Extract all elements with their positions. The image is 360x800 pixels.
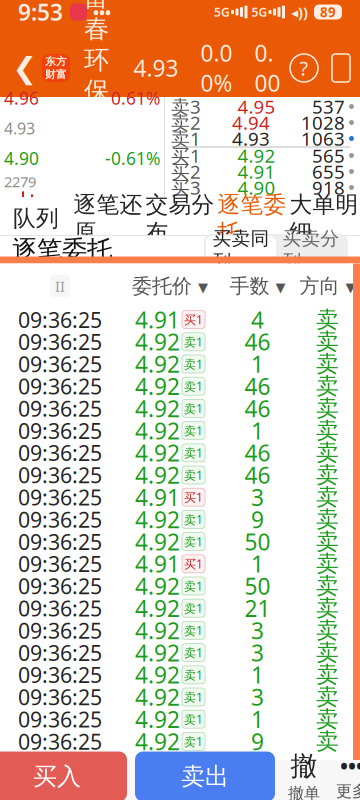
staticText: 更多 (336, 781, 360, 800)
staticText: 卖1 (184, 400, 203, 416)
staticText: ❮ (12, 51, 37, 85)
staticText: 卖1 (184, 600, 203, 616)
staticText: 大单明细 (289, 191, 358, 246)
staticText: 1 (251, 415, 264, 446)
staticText: 4.90 (237, 175, 275, 200)
staticText: 卖 (316, 439, 339, 467)
staticText: 4.92 (135, 415, 180, 446)
staticText: 买1 (184, 489, 203, 505)
staticText: 卖3 (171, 94, 201, 119)
staticText: 4.92 (135, 637, 180, 668)
staticText: 卖1 (171, 126, 201, 151)
staticText: 卖 (316, 683, 339, 711)
button[interactable]: 交易分布 (144, 197, 216, 235)
staticText: 09:36:25 (18, 527, 102, 556)
button[interactable]: 买入 (0, 751, 127, 800)
staticText: 9 (251, 726, 264, 756)
staticText: 卖1 (184, 334, 203, 350)
staticText: 4.93 (4, 118, 35, 139)
staticText: 09:36:25 (18, 416, 102, 445)
staticText: 3 (251, 482, 264, 512)
staticText: 3 (251, 682, 264, 712)
staticText: 09:36:25 (18, 305, 102, 334)
staticText: 卖 (316, 705, 339, 733)
staticText: 逐笔还原 (73, 191, 142, 246)
staticText: 2279 (4, 172, 36, 191)
staticText: 4.95 (237, 94, 275, 119)
staticText: 买3 (171, 175, 201, 200)
button[interactable]: 帮助 (290, 54, 318, 82)
staticText: 4 (251, 304, 264, 335)
button[interactable]: 撤 (283, 750, 325, 800)
staticText: 卖1 (184, 711, 203, 727)
staticText: 46 (244, 327, 270, 357)
button[interactable]: 方向 ▾ (295, 274, 360, 298)
staticText: 队列 (13, 205, 59, 232)
staticText: 4.91 (135, 549, 180, 579)
staticText: 5G (214, 4, 230, 20)
button[interactable]: 买卖同列 (206, 236, 276, 264)
button[interactable]: 逐笔委托 (216, 197, 288, 235)
button[interactable]: 返回 (8, 45, 42, 91)
staticText: 卖 (316, 727, 339, 755)
button[interactable]: ••• (325, 750, 360, 800)
staticText: 09:36:25 (18, 350, 102, 378)
staticText: 4.92 (135, 682, 180, 712)
staticText: 卖1 (184, 423, 203, 438)
staticText: 卖1 (184, 667, 203, 683)
staticText: 4.92 (135, 571, 180, 601)
staticText: 卖1 (184, 534, 203, 549)
button[interactable]: 卖出 (127, 751, 275, 800)
staticText: 46 (244, 460, 270, 490)
staticText: 09:36:25 (18, 394, 102, 422)
staticText: 4.92 (135, 660, 180, 690)
staticText: 21 (244, 593, 270, 623)
staticText: ••• (93, 1, 111, 23)
staticText: 卖 (316, 328, 339, 356)
staticText: 财富 (45, 68, 67, 81)
staticText: 4.92 (135, 460, 180, 490)
staticText: 46 (244, 438, 270, 468)
staticText: 4.92 (135, 504, 180, 534)
button[interactable]: 更多工具 (318, 54, 352, 82)
staticText: 卖 (316, 394, 339, 422)
staticText: 09:36:25 (18, 705, 102, 733)
staticText: 09:36:25 (18, 572, 102, 600)
staticText: 09:36:25 (18, 616, 102, 644)
button[interactable]: 委托价 ▾ (120, 274, 220, 298)
button[interactable]: 买卖分列 (276, 236, 346, 264)
staticText: 1 (251, 549, 264, 579)
staticText: 交易分布 (145, 191, 214, 246)
staticText: 0.00 (254, 38, 280, 98)
staticText: 655 (312, 159, 345, 184)
staticText: 09:36:25 (18, 638, 102, 667)
button[interactable]: 逐笔还原 (72, 197, 144, 235)
staticText: 4.92 (135, 726, 180, 756)
button[interactable]: 队列 (0, 197, 72, 235)
staticText: 委托价 ▾ (132, 274, 208, 298)
staticText: 46 (244, 393, 270, 423)
button[interactable]: 大单明细 (288, 197, 360, 235)
staticText: 3 (251, 615, 264, 645)
staticText: 4.92 (135, 327, 180, 357)
staticText: 89 (320, 3, 336, 21)
staticText: 卖1 (184, 733, 203, 749)
staticText: 50 (244, 571, 270, 601)
staticText: 1 (251, 660, 264, 690)
staticText: 东方 (45, 55, 67, 68)
staticText: 918 (312, 175, 345, 200)
staticText: 4.91 (135, 482, 180, 512)
staticText: 4.91 (135, 304, 180, 335)
staticText: 卖1 (184, 689, 203, 705)
staticText: 09:36:25 (18, 727, 102, 755)
button[interactable]: 手数 ▾ (220, 274, 295, 298)
staticText: 0.00% (200, 38, 232, 98)
staticText: 4.90 (4, 147, 39, 170)
staticText: 买1 (184, 556, 203, 572)
staticText: 4.92 (135, 526, 180, 557)
staticText: 卖 (316, 661, 339, 689)
staticText: 4.91 (237, 159, 275, 184)
staticText: 撤单 (288, 784, 320, 800)
staticText: 09:36:25 (18, 328, 102, 356)
staticText: 卖 (316, 550, 339, 578)
